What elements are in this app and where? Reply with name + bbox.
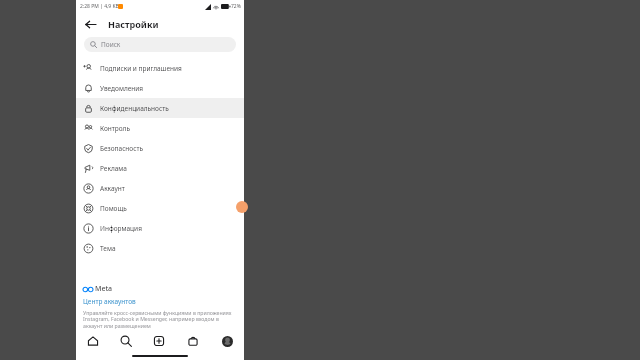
button[interactable]: Помощь [76,198,244,218]
staticText: Аккаунт [100,184,125,193]
button[interactable]: Подписки и приглашения [76,58,244,78]
staticText: 72% [231,3,241,10]
button[interactable]: Информация [76,218,244,238]
button[interactable]: Profile [210,330,244,352]
button[interactable]: Поиск [84,37,236,52]
staticText: Безопасность [100,144,143,153]
staticText: 2:28 PM | 4,9 KB/s [80,3,124,10]
staticText: Поиск [101,40,121,49]
staticText: Реклама [100,164,127,173]
staticText: Настройки [108,18,159,30]
button[interactable]: Безопасность [76,138,244,158]
button[interactable]: Тема [76,238,244,258]
staticText: Тема [100,244,116,253]
button[interactable]: Аккаунт [76,178,244,198]
staticText: Информация [100,224,142,233]
button[interactable]: Shop [176,330,210,352]
button[interactable]: Реклама [76,158,244,178]
button[interactable]: Центр аккаунтов [83,297,136,306]
button[interactable]: Home [76,330,109,352]
staticText: Конфиденциальность [100,104,169,113]
staticText: Meta [95,284,113,294]
button[interactable]: Search [109,330,142,352]
staticText: Уведомления [100,84,144,93]
button[interactable]: Create [142,330,176,352]
button[interactable]: Уведомления [76,78,244,98]
staticText: Контроль [100,124,130,133]
button[interactable]: Back [80,14,100,34]
staticText: Помощь [100,204,127,213]
staticText: Управляйте кросс-сервисными функциями в … [83,309,236,330]
button[interactable]: Конфиденциальность [76,98,244,118]
staticText: Подписки и приглашения [100,64,182,73]
button[interactable]: Контроль [76,118,244,138]
